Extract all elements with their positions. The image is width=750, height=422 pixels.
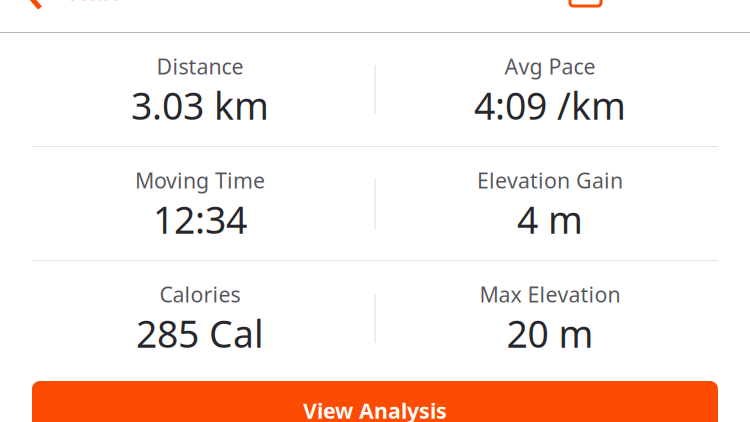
button[interactable]: View Analysis: [32, 381, 718, 422]
staticText: Moving Time: [135, 166, 265, 194]
staticText: View Analysis: [303, 396, 447, 422]
staticText: Run: [68, 0, 119, 8]
staticText: 3.03 km: [131, 80, 269, 130]
staticText: Avg Pace: [504, 52, 595, 80]
button[interactable]: Run: [57, 0, 131, 8]
staticText: Distance: [156, 52, 243, 80]
staticText: 4:09 /km: [474, 80, 626, 130]
staticText: Elevation Gain: [477, 166, 623, 194]
staticText: Max Elevation: [479, 280, 620, 308]
staticText: Calories: [159, 280, 240, 308]
staticText: 285 Cal: [136, 308, 264, 358]
button[interactable]: Share: [570, 0, 601, 6]
button[interactable]: Back: [26, 0, 42, 32]
staticText: 4 m: [517, 194, 583, 244]
staticText: 12:34: [153, 194, 247, 244]
staticText: 20 m: [506, 308, 593, 358]
